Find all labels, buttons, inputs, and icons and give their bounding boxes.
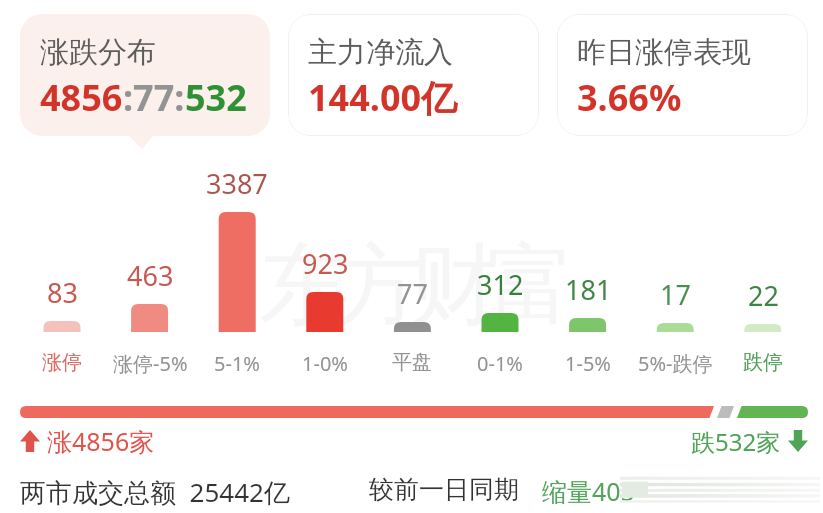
- staticText: 涨4856家: [47, 424, 155, 458]
- staticText: 平盘: [392, 350, 432, 375]
- staticText: 4856: [40, 73, 123, 122]
- button[interactable]: 昨日涨停表现: [557, 14, 808, 136]
- staticText: 昨日涨停表现: [577, 34, 751, 71]
- staticText: 两市成交总额 25442亿: [20, 474, 290, 510]
- staticText: 83: [47, 274, 78, 311]
- staticText: 923: [302, 245, 349, 282]
- staticText: 463: [127, 257, 174, 294]
- other: Advancing stocks: [20, 430, 40, 452]
- staticText: 181: [565, 271, 612, 308]
- staticText: 跌停: [743, 350, 783, 375]
- staticText: 77: [397, 275, 428, 312]
- staticText: 涨停: [42, 350, 82, 375]
- staticText: 144.00亿: [308, 73, 458, 122]
- staticText: 跌532家: [691, 425, 781, 458]
- staticText: :77:: [123, 73, 185, 122]
- staticText: 1-0%: [302, 350, 348, 377]
- staticText: 主力净流入: [308, 34, 453, 71]
- staticText: 0-1%: [477, 350, 523, 377]
- staticText: 5-1%: [214, 350, 260, 377]
- staticText: 缩量405: [542, 474, 635, 508]
- staticText: 较前一日同期: [369, 474, 519, 505]
- staticText: 3.66%: [577, 73, 682, 122]
- staticText: 5%-跌停: [638, 350, 713, 377]
- other: Declining stocks: [788, 430, 808, 452]
- staticText: 涨跌分布: [40, 34, 156, 71]
- button[interactable]: 主力净流入: [288, 14, 539, 136]
- staticText: 东方财富: [265, 230, 569, 341]
- staticText: 17: [660, 276, 691, 313]
- staticText: 3387: [206, 165, 268, 202]
- staticText: 涨停-5%: [113, 350, 188, 377]
- button[interactable]: 涨跌分布: [20, 14, 270, 136]
- staticText: 312: [477, 266, 524, 303]
- staticText: 1-5%: [565, 350, 611, 377]
- staticText: 532: [185, 73, 247, 122]
- staticText: 22: [748, 277, 779, 314]
